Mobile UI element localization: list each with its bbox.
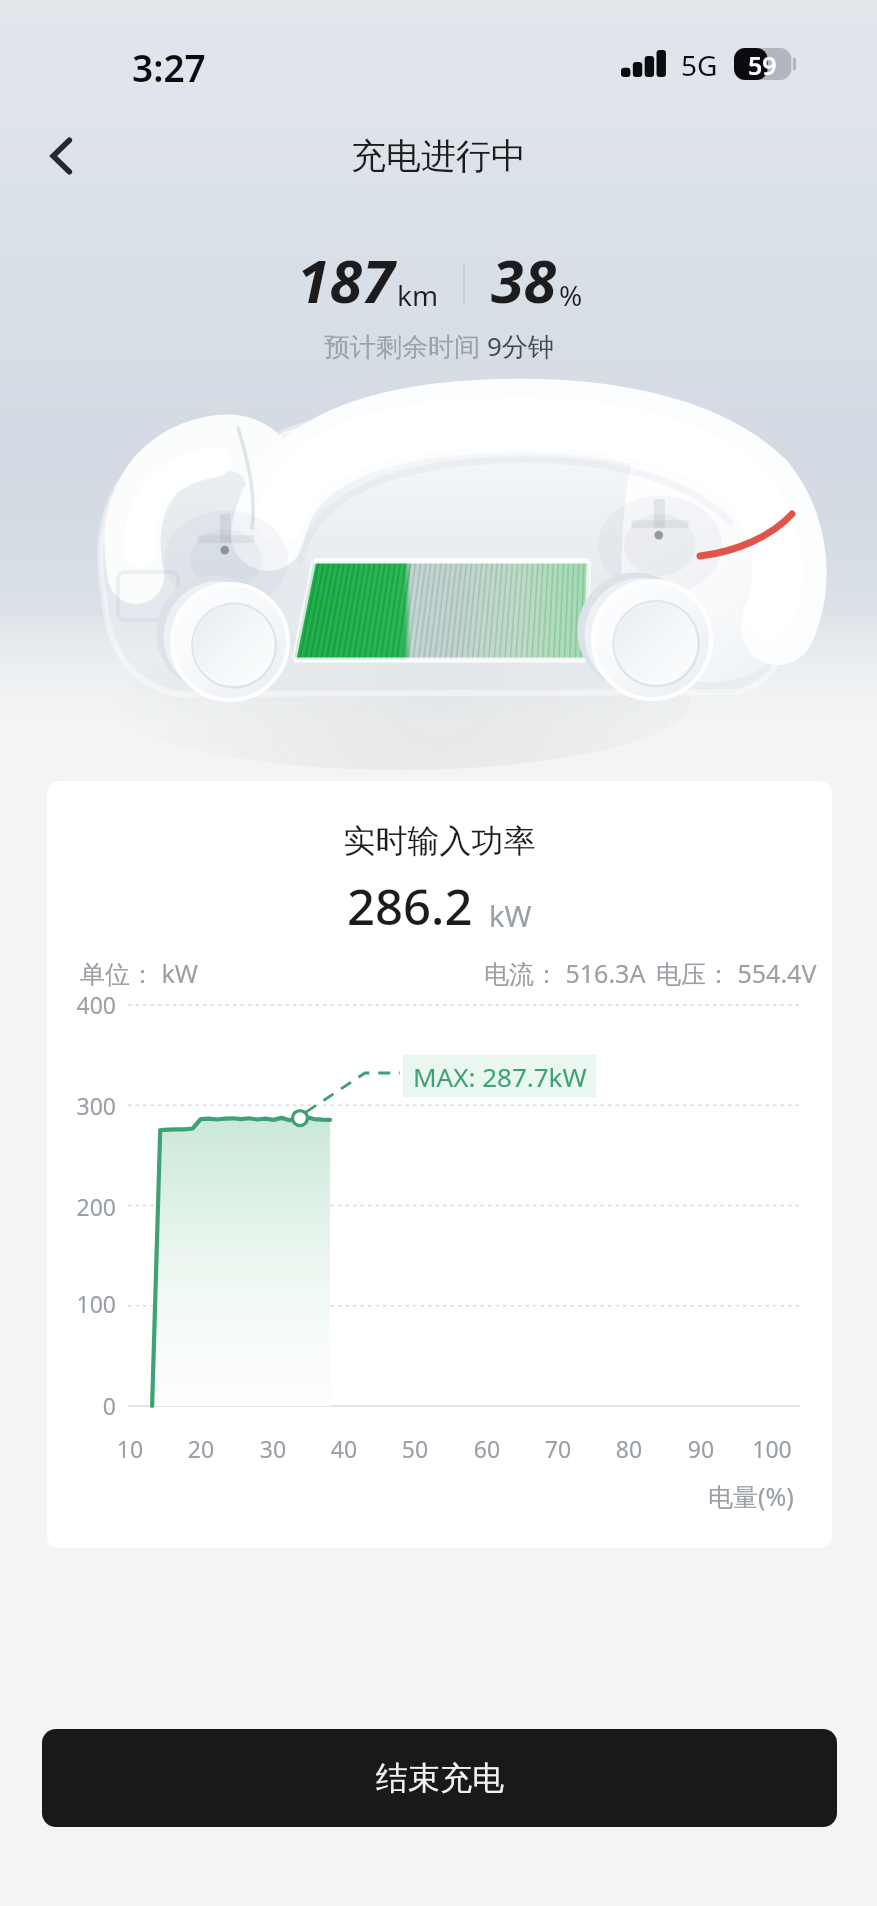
staticText: 实时输入功率 <box>47 821 832 861</box>
staticText: 400 <box>56 989 116 1020</box>
staticText: 30 <box>238 1433 308 1464</box>
staticText: 电压： 554.4V <box>656 956 817 990</box>
staticText: 200 <box>56 1191 116 1222</box>
staticText: 38 <box>491 240 557 320</box>
staticText: 20 <box>166 1433 236 1464</box>
staticText: MAX: 287.7kW <box>413 1059 587 1094</box>
staticText: 70 <box>523 1433 593 1464</box>
staticText: 0 <box>56 1390 116 1421</box>
staticText: 电流： 516.3A <box>484 956 646 990</box>
button[interactable]: 结束充电 <box>42 1729 837 1827</box>
staticText: 充电进行中 <box>0 134 877 178</box>
staticText: 预计剩余时间 <box>324 328 487 364</box>
staticText: 60 <box>452 1433 522 1464</box>
staticText: 单位： kW <box>80 956 199 990</box>
staticText: 10 <box>95 1433 165 1464</box>
staticText: 5G <box>681 46 718 84</box>
staticText: 40 <box>309 1433 379 1464</box>
staticText: 59 <box>748 48 777 80</box>
staticText: 3:27 <box>132 42 206 92</box>
button[interactable]: Back <box>27 122 97 192</box>
staticText: 90 <box>666 1433 736 1464</box>
staticText: 100 <box>737 1433 807 1464</box>
staticText: 187 <box>297 240 395 320</box>
staticText: % <box>559 276 583 314</box>
staticText: 300 <box>56 1090 116 1121</box>
staticText: 100 <box>56 1288 116 1319</box>
staticText: 286.2 <box>347 873 473 940</box>
staticText: 电量(%) <box>708 1479 794 1513</box>
staticText: 结束充电 <box>376 1758 504 1798</box>
staticText: 50 <box>380 1433 450 1464</box>
staticText: kW <box>489 896 532 935</box>
staticText: 9分钟 <box>487 328 554 364</box>
staticText: km <box>397 276 439 314</box>
staticText: 80 <box>594 1433 664 1464</box>
